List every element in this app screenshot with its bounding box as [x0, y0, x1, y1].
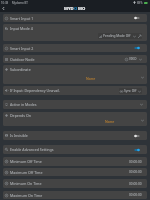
staticText: Mydomo BT	[12, 1, 28, 5]
staticText: Is Invisible	[10, 133, 28, 138]
staticText: Enable Advanced Settings	[10, 147, 54, 152]
button[interactable]: Maximum On Time	[3, 191, 147, 199]
button[interactable]: Sync Off	[119, 88, 142, 94]
staticText: 00:00:00	[129, 170, 142, 174]
button[interactable]: Outdoor Node	[3, 55, 147, 63]
staticText: Maximum Off Time	[10, 170, 43, 175]
button[interactable]: Depends On	[3, 112, 147, 126]
button[interactable]: Back	[0, 5, 7, 12]
staticText: 00:00:00	[129, 182, 142, 186]
button[interactable]: Maximum Off Time	[3, 168, 147, 176]
staticText: O	[74, 6, 78, 12]
staticText: None	[86, 76, 96, 81]
staticText: Sync Off	[124, 89, 137, 93]
staticText: Smart Input 2	[10, 46, 34, 51]
staticText: Outdoor Node	[10, 57, 35, 62]
staticText: Subordinate	[10, 67, 31, 72]
staticText: 00:00:00	[129, 193, 142, 197]
button[interactable]: Input Mode 4	[3, 24, 147, 41]
staticText: VIKO	[129, 57, 137, 61]
staticText: Maximum On Time	[10, 193, 43, 198]
staticText: Smart Input 1	[10, 16, 34, 21]
button[interactable]: Smart Input 2	[3, 44, 147, 52]
button[interactable]: Subordinate	[3, 65, 147, 84]
button[interactable]: Enable Advanced Settings	[3, 145, 147, 154]
button[interactable]: Is Invisible	[3, 131, 147, 140]
staticText: Depends On	[10, 113, 32, 118]
staticText: Minimum On Time	[10, 181, 42, 186]
staticText: 10:38	[1, 1, 9, 5]
button[interactable]: Toggle on	[134, 148, 140, 152]
staticText: If Input: Dependency Unavail.	[10, 88, 61, 93]
staticText: 00:00:00	[129, 160, 142, 164]
staticText: MYD	[64, 6, 74, 12]
staticText: 88%	[137, 1, 143, 5]
button[interactable]: Toggle off	[134, 134, 140, 138]
button[interactable]: Toggle off	[134, 16, 140, 20]
button[interactable]: If Input: Dependency Unavail.	[3, 86, 147, 95]
staticText: Pending Mode Off	[103, 34, 131, 38]
button[interactable]: Minimum On Time	[3, 179, 147, 188]
staticText: None	[105, 119, 115, 124]
staticText: MO	[78, 6, 86, 12]
button[interactable]: Active in Modes	[3, 100, 147, 109]
button[interactable]: Pending Mode Off	[98, 33, 142, 39]
staticText: Input Mode 4	[10, 26, 33, 31]
button[interactable]: Smart Input 1	[3, 14, 147, 22]
staticText: Minimum Off Time	[10, 159, 42, 164]
button[interactable]: Minimum Off Time	[3, 157, 147, 166]
button[interactable]: Toggle on	[134, 46, 140, 50]
staticText: Active in Modes	[10, 102, 37, 107]
